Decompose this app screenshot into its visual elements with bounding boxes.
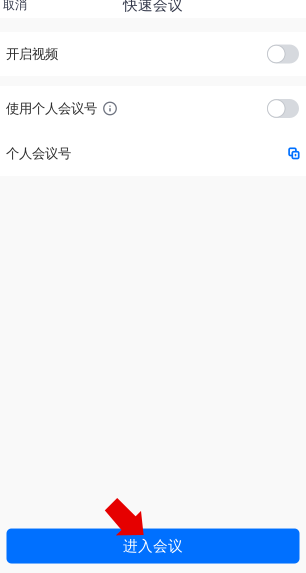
button[interactable]: 进入会议 bbox=[6, 528, 299, 563]
staticText: 取消 bbox=[3, 0, 27, 12]
button[interactable]: 使用个人会议号 bbox=[0, 86, 306, 131]
staticText: 进入会议 bbox=[123, 537, 183, 555]
button[interactable]: 取消 bbox=[0, 0, 33, 18]
staticText: 个人会议号 bbox=[6, 145, 71, 162]
button[interactable]: 开启视频 bbox=[0, 32, 306, 76]
button[interactable]: 使用个人会议号开关 bbox=[267, 99, 299, 118]
staticText: 使用个人会议号 bbox=[6, 100, 97, 117]
staticText: 开启视频 bbox=[6, 46, 58, 62]
staticText: 快速会议 bbox=[123, 0, 183, 14]
button[interactable]: 开启视频开关 bbox=[267, 44, 299, 63]
button[interactable]: 复制个人会议号 bbox=[289, 148, 299, 159]
button[interactable]: 什么是个人会议号 bbox=[103, 102, 116, 115]
